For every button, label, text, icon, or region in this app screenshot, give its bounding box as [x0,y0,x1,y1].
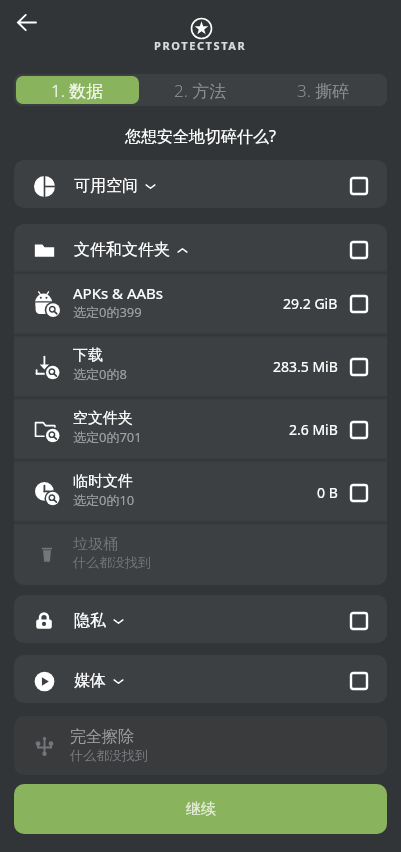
staticText: 1. 数据 [51,79,104,102]
button[interactable]: Select [347,174,371,198]
button[interactable]: Select [347,418,371,442]
staticText: 隐私 [74,611,106,631]
button[interactable]: 2. 方法 [139,76,262,104]
button[interactable]: Select [347,238,371,262]
staticText: 选定0的399 [73,303,142,321]
staticText: 垃圾桶 [73,535,118,554]
staticText: 2. 方法 [174,79,227,102]
button[interactable]: Back [6,2,46,42]
staticText: 媒体 [74,671,106,691]
staticText: 文件和文件夹 [74,240,170,260]
button[interactable]: 继续 [14,784,387,834]
button[interactable]: Select [347,609,371,633]
staticText: 选定0的8 [73,365,127,383]
staticText: APKs & AABs [73,283,164,303]
staticText: 选定0的701 [73,428,142,446]
button[interactable]: 隐私 [14,595,387,643]
staticText: 完全擦除 [70,727,134,747]
staticText: 什么都没找到 [73,554,151,570]
staticText: 2.6 MiB [289,420,338,439]
button[interactable]: Select [347,481,371,505]
staticText: 可用空间 [74,176,138,196]
staticText: 283.5 MiB [273,357,338,376]
staticText: PROTECTSTAR [154,38,247,53]
button[interactable]: 媒体 [14,655,387,703]
button[interactable]: Select [347,669,371,693]
button[interactable]: 3. 撕碎 [262,76,385,104]
staticText: 临时文件 [73,472,133,491]
button[interactable]: 空文件夹 [14,398,387,461]
button[interactable]: 1. 数据 [16,76,139,104]
button[interactable]: 可用空间 [14,160,387,208]
button[interactable]: Select [347,355,371,379]
staticText: 什么都没找到 [70,747,148,763]
button[interactable]: 文件和文件夹 [14,224,387,272]
staticText: 0 B [317,483,338,502]
button[interactable]: APKs & AABs [14,272,387,335]
button[interactable]: Select [347,292,371,316]
staticText: 继续 [186,800,216,819]
staticText: 选定0的10 [73,491,135,509]
button[interactable]: 下载 [14,335,387,398]
staticText: 您想安全地切碎什么? [125,125,276,147]
staticText: 下载 [73,346,103,365]
staticText: 空文件夹 [73,409,133,428]
button[interactable]: 完全擦除 [14,716,387,775]
staticText: 29.2 GiB [283,294,338,313]
button[interactable]: 临时文件 [14,461,387,524]
staticText: 3. 撕碎 [297,79,350,102]
